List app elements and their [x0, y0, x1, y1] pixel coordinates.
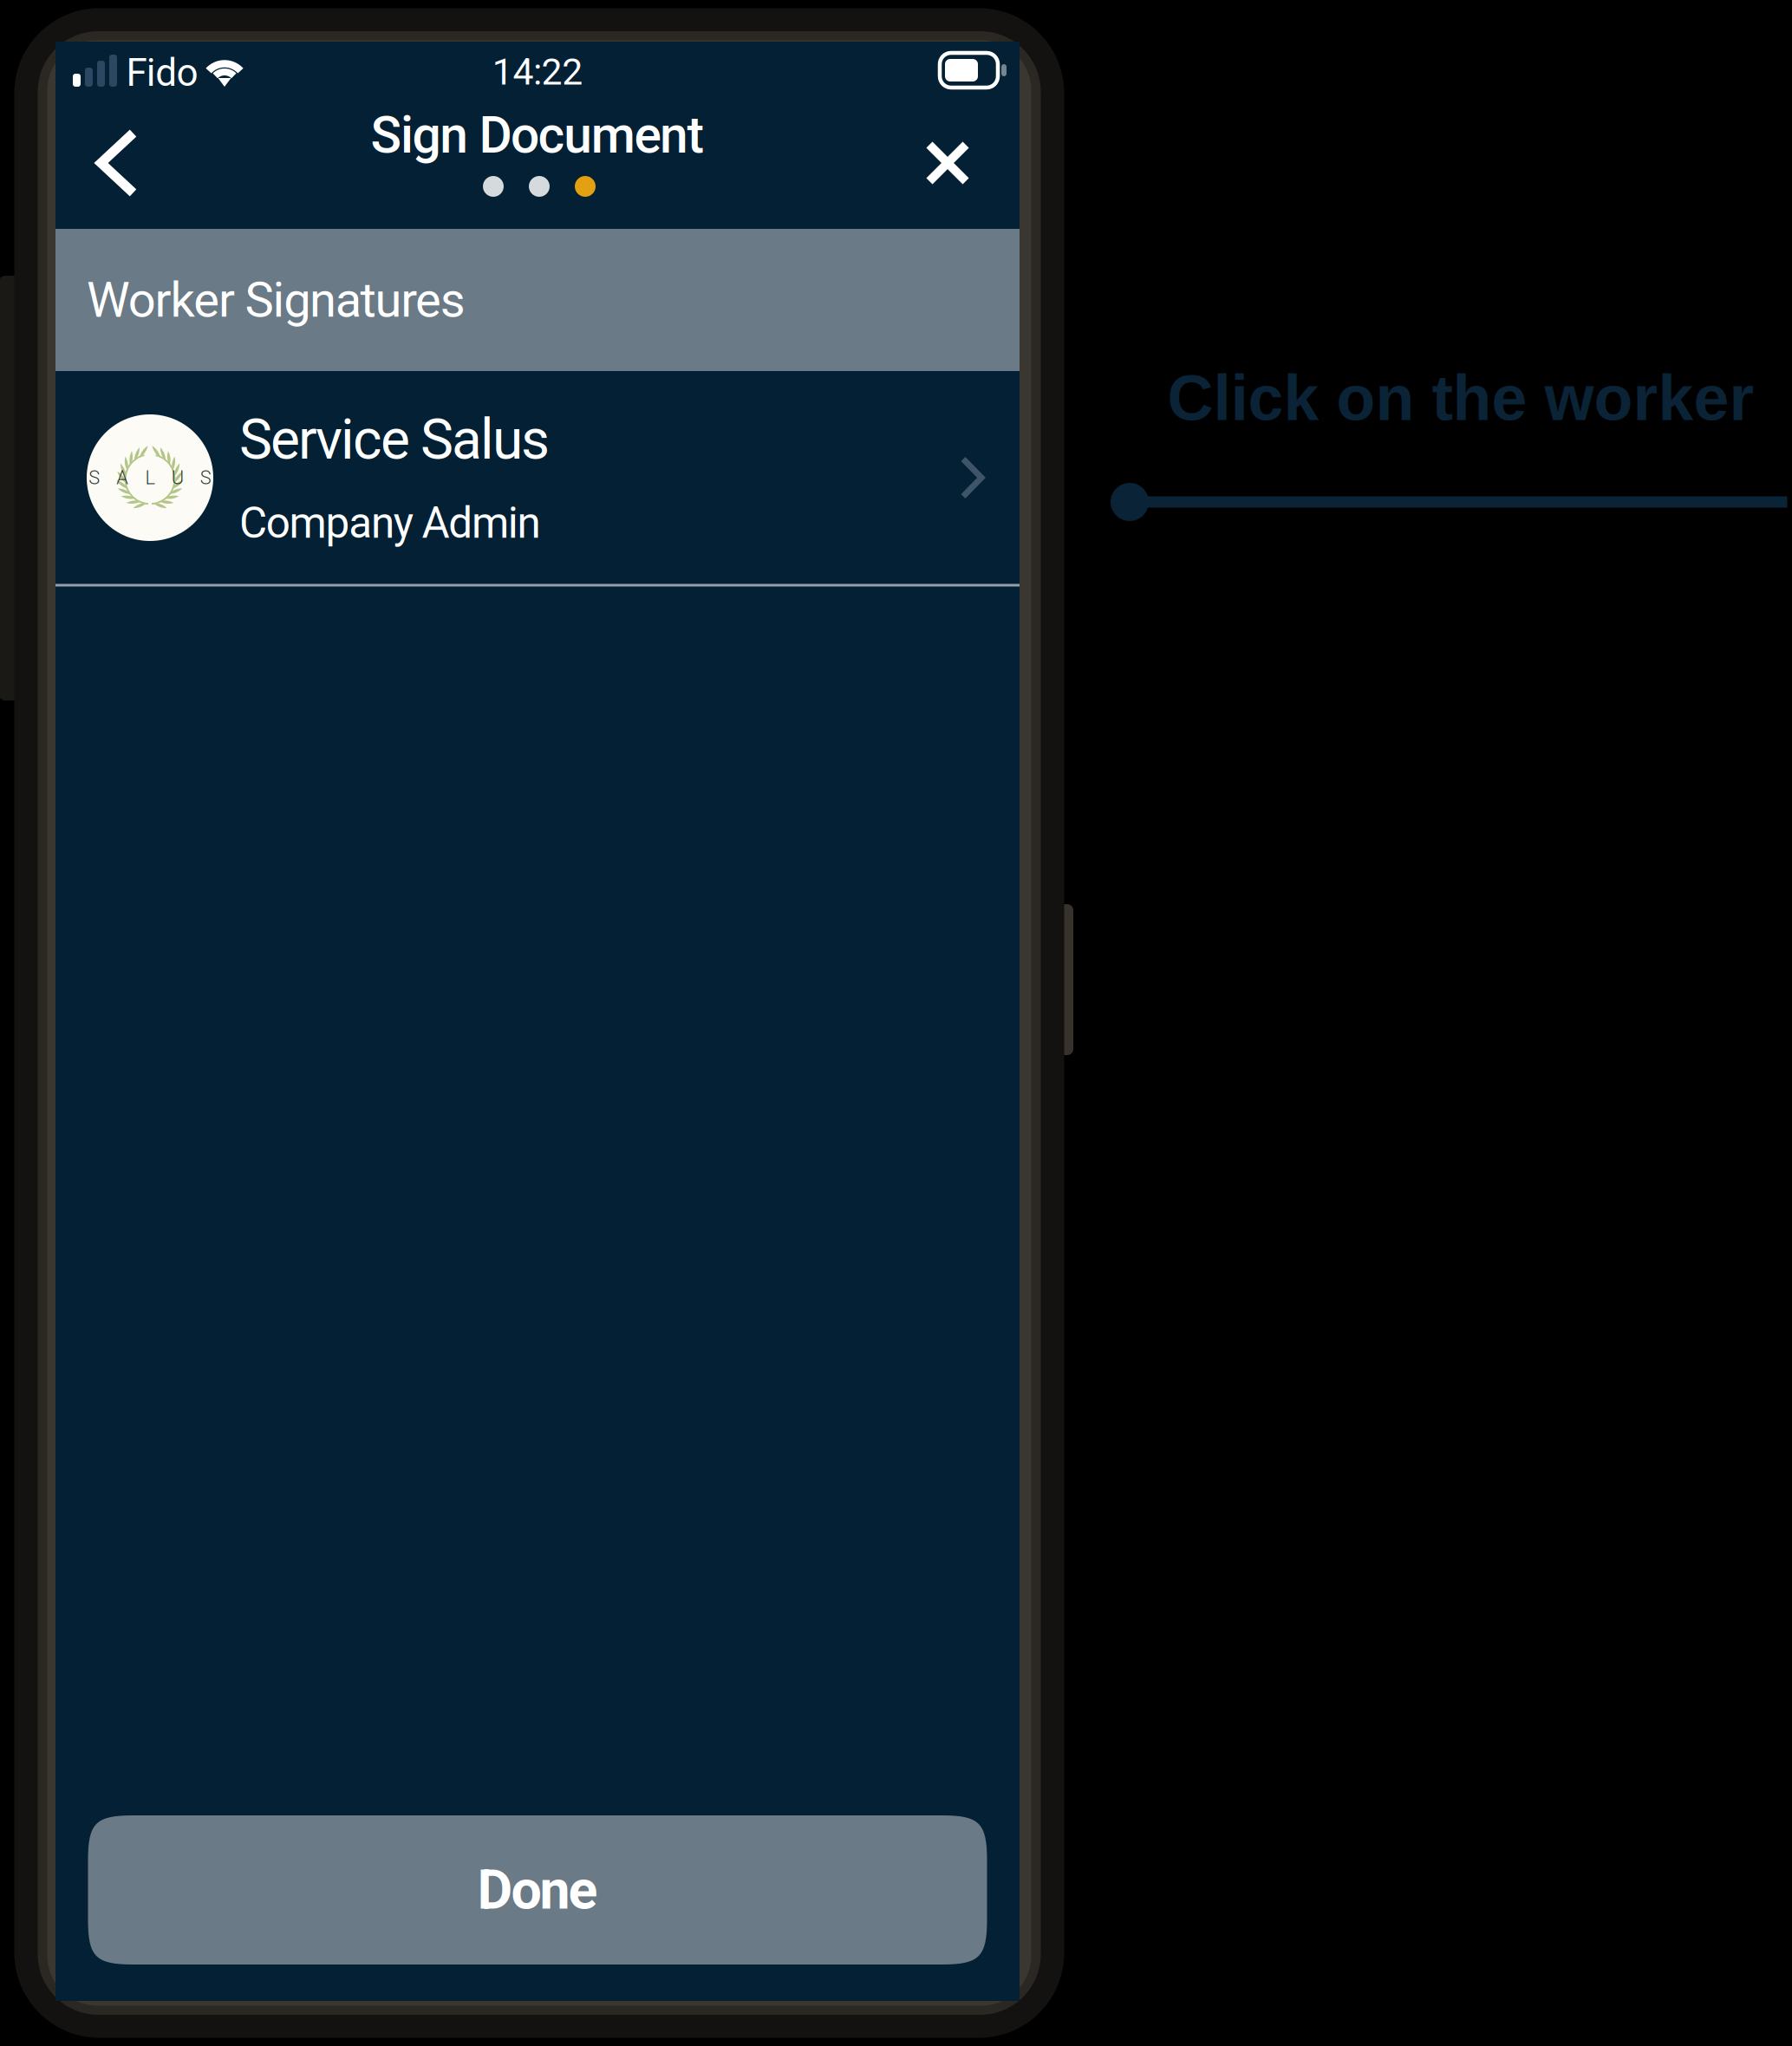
staticText: Click on the worker	[1167, 362, 1754, 433]
staticText: A	[116, 467, 129, 489]
button[interactable]: Done	[88, 1815, 987, 1965]
staticText: Company Admin	[239, 498, 541, 548]
staticText: Done	[477, 1858, 598, 1922]
staticText: S	[200, 467, 211, 489]
staticText: L	[145, 467, 155, 489]
staticText: U	[171, 467, 184, 489]
button[interactable]: S	[55, 371, 1020, 584]
button[interactable]: Back	[65, 111, 169, 215]
staticText: Service Salus	[239, 407, 550, 472]
staticText: S	[89, 467, 100, 489]
staticText: 14:22	[492, 50, 583, 94]
button[interactable]: Close	[896, 111, 1000, 215]
staticText: Fido	[126, 50, 198, 95]
staticText: Worker Signatures	[87, 272, 465, 328]
staticText: Sign Document	[371, 105, 704, 165]
